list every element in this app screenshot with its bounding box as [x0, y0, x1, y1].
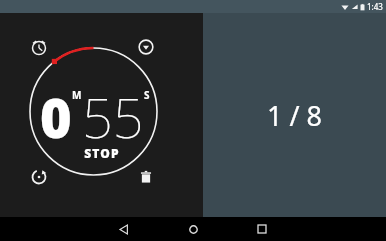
button[interactable]: 1 / 8 — [203, 13, 386, 217]
staticText: 55 — [82, 80, 144, 154]
button[interactable]: Back — [112, 217, 136, 241]
button[interactable]: Recent apps — [250, 217, 274, 241]
button[interactable]: STOP — [84, 145, 120, 161]
staticText: 0 — [40, 80, 72, 154]
button[interactable]: More options — [135, 36, 157, 58]
staticText: M — [72, 88, 82, 102]
staticText: 1 / 8 — [267, 97, 322, 134]
staticText: 1:43 — [367, 1, 383, 12]
button[interactable]: Delete timer — [135, 166, 157, 188]
staticText: STOP — [84, 145, 120, 161]
staticText: S — [144, 88, 150, 102]
button[interactable]: Home — [181, 217, 205, 241]
button[interactable]: Reset timer — [28, 166, 50, 188]
button[interactable]: Set alarm — [28, 36, 50, 58]
